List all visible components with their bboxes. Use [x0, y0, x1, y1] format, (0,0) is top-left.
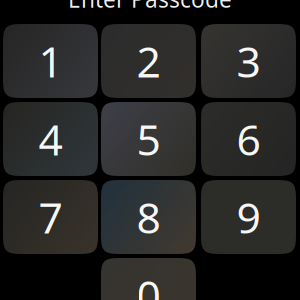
button[interactable]: 4: [3, 102, 98, 176]
button[interactable]: 7: [3, 180, 98, 254]
button[interactable]: 0: [101, 258, 196, 300]
button[interactable]: 1: [3, 24, 98, 98]
button[interactable]: 3: [201, 24, 296, 98]
staticText: 2: [136, 33, 160, 89]
button[interactable]: 9: [201, 180, 296, 254]
staticText: Enter Passcode: [68, 0, 232, 14]
staticText: 5: [136, 111, 160, 167]
button[interactable]: 2: [101, 24, 196, 98]
staticText: 4: [38, 111, 62, 167]
staticText: 3: [236, 33, 260, 89]
staticText: 9: [236, 189, 260, 245]
staticText: 1: [38, 33, 62, 89]
staticText: 0: [136, 267, 160, 300]
staticText: 6: [236, 111, 260, 167]
staticText: 7: [38, 189, 62, 245]
staticText: 8: [136, 189, 160, 245]
button[interactable]: 6: [201, 102, 296, 176]
button[interactable]: 5: [101, 102, 196, 176]
button[interactable]: 8: [101, 180, 196, 254]
